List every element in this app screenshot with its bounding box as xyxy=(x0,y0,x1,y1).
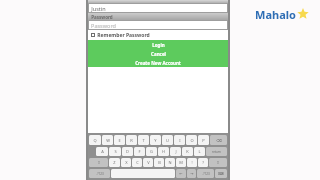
staticText: Mahalo xyxy=(255,7,296,22)
button[interactable]: ! xyxy=(187,158,197,167)
button[interactable]: ⇧ xyxy=(89,158,108,167)
staticText: Justin xyxy=(91,5,106,12)
button[interactable]: Password xyxy=(88,20,228,30)
button[interactable]: E xyxy=(114,135,125,145)
button[interactable]: R xyxy=(126,135,137,145)
staticText: D xyxy=(126,149,129,154)
staticText: R xyxy=(130,138,133,143)
staticText: Create New Account xyxy=(135,60,181,66)
staticText: ⌫ xyxy=(216,138,222,143)
button[interactable]: I xyxy=(174,135,185,145)
button[interactable]: Y xyxy=(150,135,161,145)
button[interactable]: A xyxy=(96,147,108,156)
staticText: H xyxy=(162,149,165,154)
staticText: U xyxy=(166,138,169,143)
button[interactable]: H xyxy=(158,147,169,156)
staticText: G xyxy=(150,149,153,154)
button[interactable]: V xyxy=(143,158,153,167)
button[interactable]: O xyxy=(186,135,197,145)
button[interactable]: space xyxy=(111,169,175,178)
staticText: return xyxy=(212,150,221,154)
button[interactable]: ⇧ xyxy=(209,158,227,167)
button[interactable]: Create New Account xyxy=(88,58,228,67)
button[interactable]: X xyxy=(121,158,131,167)
staticText: X xyxy=(125,160,128,165)
staticText: .?123 xyxy=(202,172,210,176)
staticText: S xyxy=(114,149,117,154)
staticText: I xyxy=(179,138,181,143)
staticText: L xyxy=(198,149,201,154)
staticText: ← xyxy=(179,171,183,176)
staticText: W xyxy=(106,138,110,143)
button[interactable]: M xyxy=(176,158,186,167)
staticText: B xyxy=(158,160,161,165)
button[interactable]: N xyxy=(165,158,175,167)
staticText: Login xyxy=(152,42,165,48)
staticText: Password xyxy=(91,22,116,29)
button[interactable]: T xyxy=(138,135,149,145)
button[interactable]: W xyxy=(102,135,113,145)
button[interactable]: ← xyxy=(176,169,186,178)
button[interactable]: Login xyxy=(88,40,228,49)
button[interactable]: .?123 xyxy=(197,169,214,178)
button[interactable]: ? xyxy=(198,158,208,167)
button[interactable]: U xyxy=(162,135,173,145)
staticText: C xyxy=(136,160,139,165)
staticText: F xyxy=(138,149,141,154)
staticText: ⇧ xyxy=(216,160,220,165)
staticText: E xyxy=(118,138,121,143)
staticText: O xyxy=(190,138,194,143)
button[interactable]: ⌫ xyxy=(210,135,227,145)
staticText: → xyxy=(190,171,194,176)
button[interactable]: G xyxy=(146,147,157,156)
staticText: J xyxy=(175,149,177,154)
staticText: ⇧ xyxy=(97,160,101,165)
button[interactable]: return xyxy=(206,147,227,156)
button[interactable]: J xyxy=(170,147,181,156)
staticText: M xyxy=(179,160,183,165)
staticText: K xyxy=(186,149,189,154)
staticText: T xyxy=(142,138,145,143)
staticText: ! xyxy=(191,160,193,165)
staticText: V xyxy=(147,160,150,165)
staticText: Z xyxy=(113,160,116,165)
staticText: Y xyxy=(154,138,157,143)
staticText: .?123 xyxy=(96,172,104,176)
button[interactable]: D xyxy=(122,147,133,156)
staticText: Cancel xyxy=(151,51,166,57)
staticText: A xyxy=(101,149,104,154)
button[interactable]: Z xyxy=(109,158,120,167)
button[interactable]: K xyxy=(182,147,193,156)
staticText: N xyxy=(168,160,172,165)
button[interactable]: ⌨ xyxy=(215,169,227,178)
button[interactable]: Justin xyxy=(88,3,228,13)
staticText: Password xyxy=(91,14,113,20)
button[interactable]: B xyxy=(154,158,164,167)
button[interactable]: P xyxy=(198,135,209,145)
button[interactable]: Q xyxy=(89,135,101,145)
button[interactable]: Cancel xyxy=(88,49,228,58)
staticText: Q xyxy=(93,138,97,143)
button[interactable]: C xyxy=(132,158,142,167)
staticText: Remember Password xyxy=(97,32,150,39)
button[interactable]: F xyxy=(134,147,145,156)
button[interactable]: Remember Password xyxy=(88,30,228,40)
button[interactable]: → xyxy=(187,169,196,178)
staticText: ? xyxy=(202,160,204,165)
button[interactable]: S xyxy=(109,147,121,156)
button[interactable]: .?123 xyxy=(89,169,110,178)
staticText: ⌨ xyxy=(218,171,224,176)
button[interactable]: L xyxy=(194,147,205,156)
staticText: P xyxy=(202,138,205,143)
